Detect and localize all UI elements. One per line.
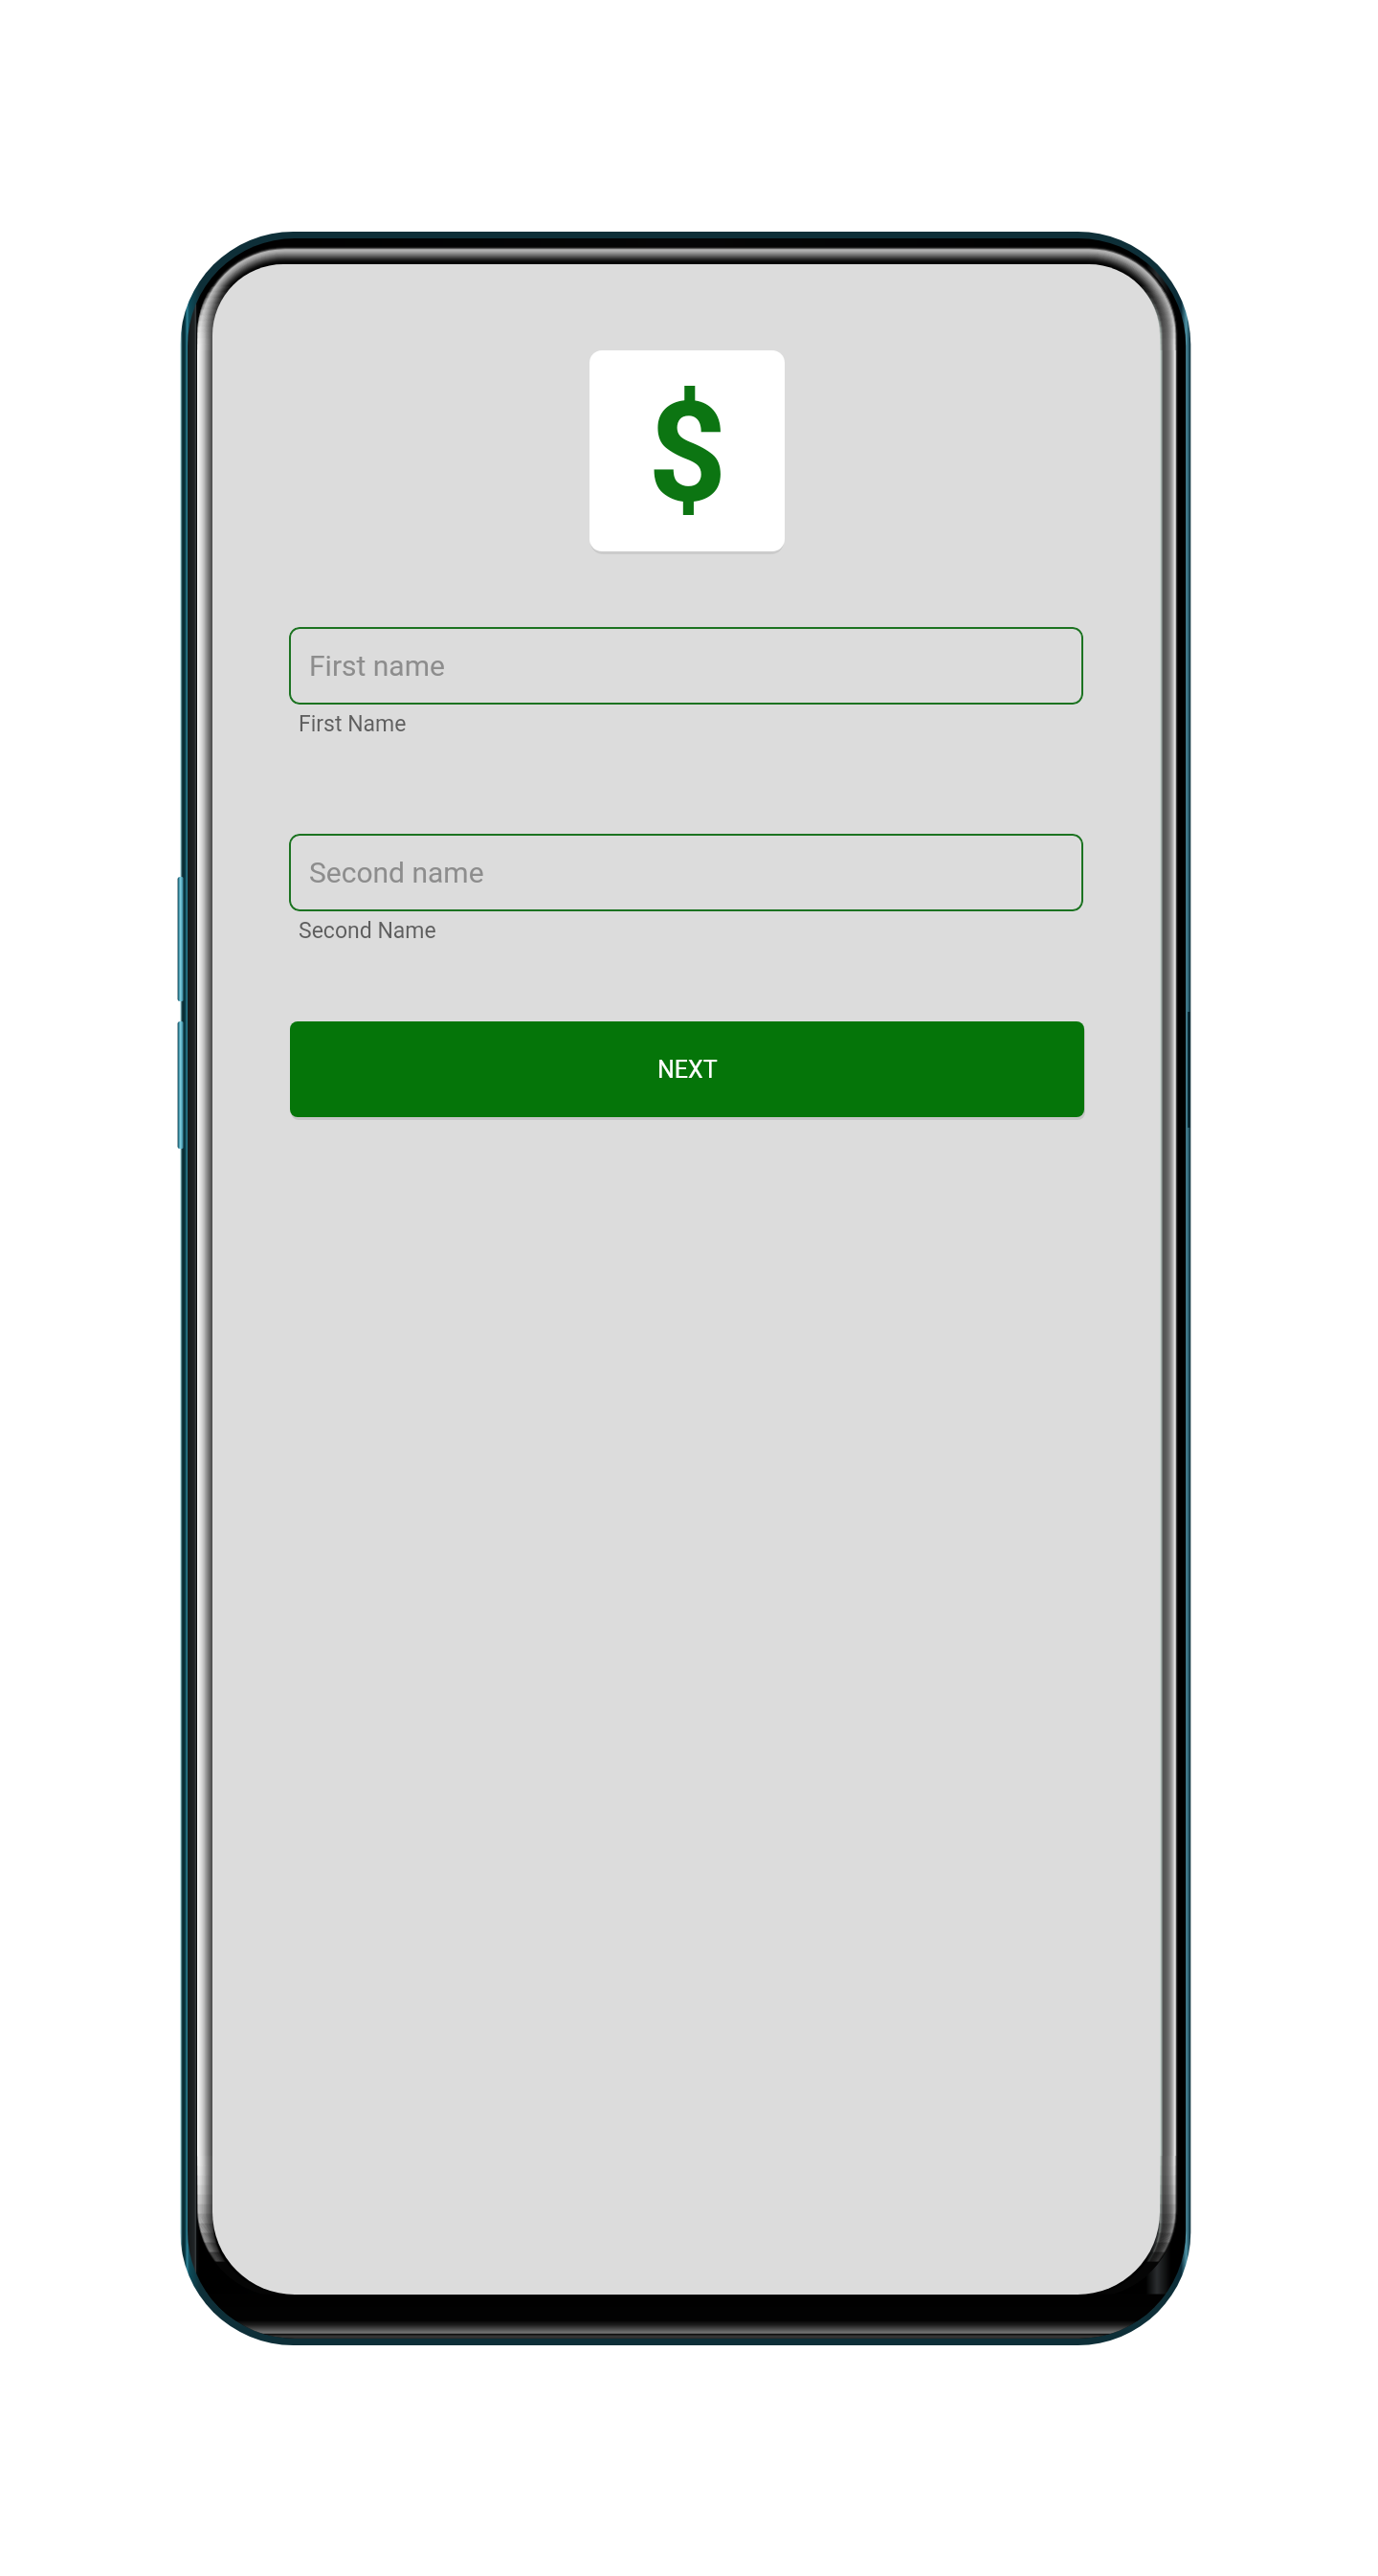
staticText: Second name bbox=[309, 856, 484, 889]
staticText: NEXT bbox=[657, 1056, 718, 1084]
button[interactable]: First name bbox=[289, 627, 1083, 705]
staticText: $ bbox=[648, 372, 727, 534]
other: App logo bbox=[589, 350, 785, 551]
button[interactable]: Second name bbox=[289, 834, 1083, 911]
staticText: Second Name bbox=[299, 918, 436, 944]
button[interactable]: NEXT bbox=[290, 1021, 1084, 1117]
staticText: First Name bbox=[299, 711, 407, 737]
staticText: First name bbox=[309, 649, 445, 683]
